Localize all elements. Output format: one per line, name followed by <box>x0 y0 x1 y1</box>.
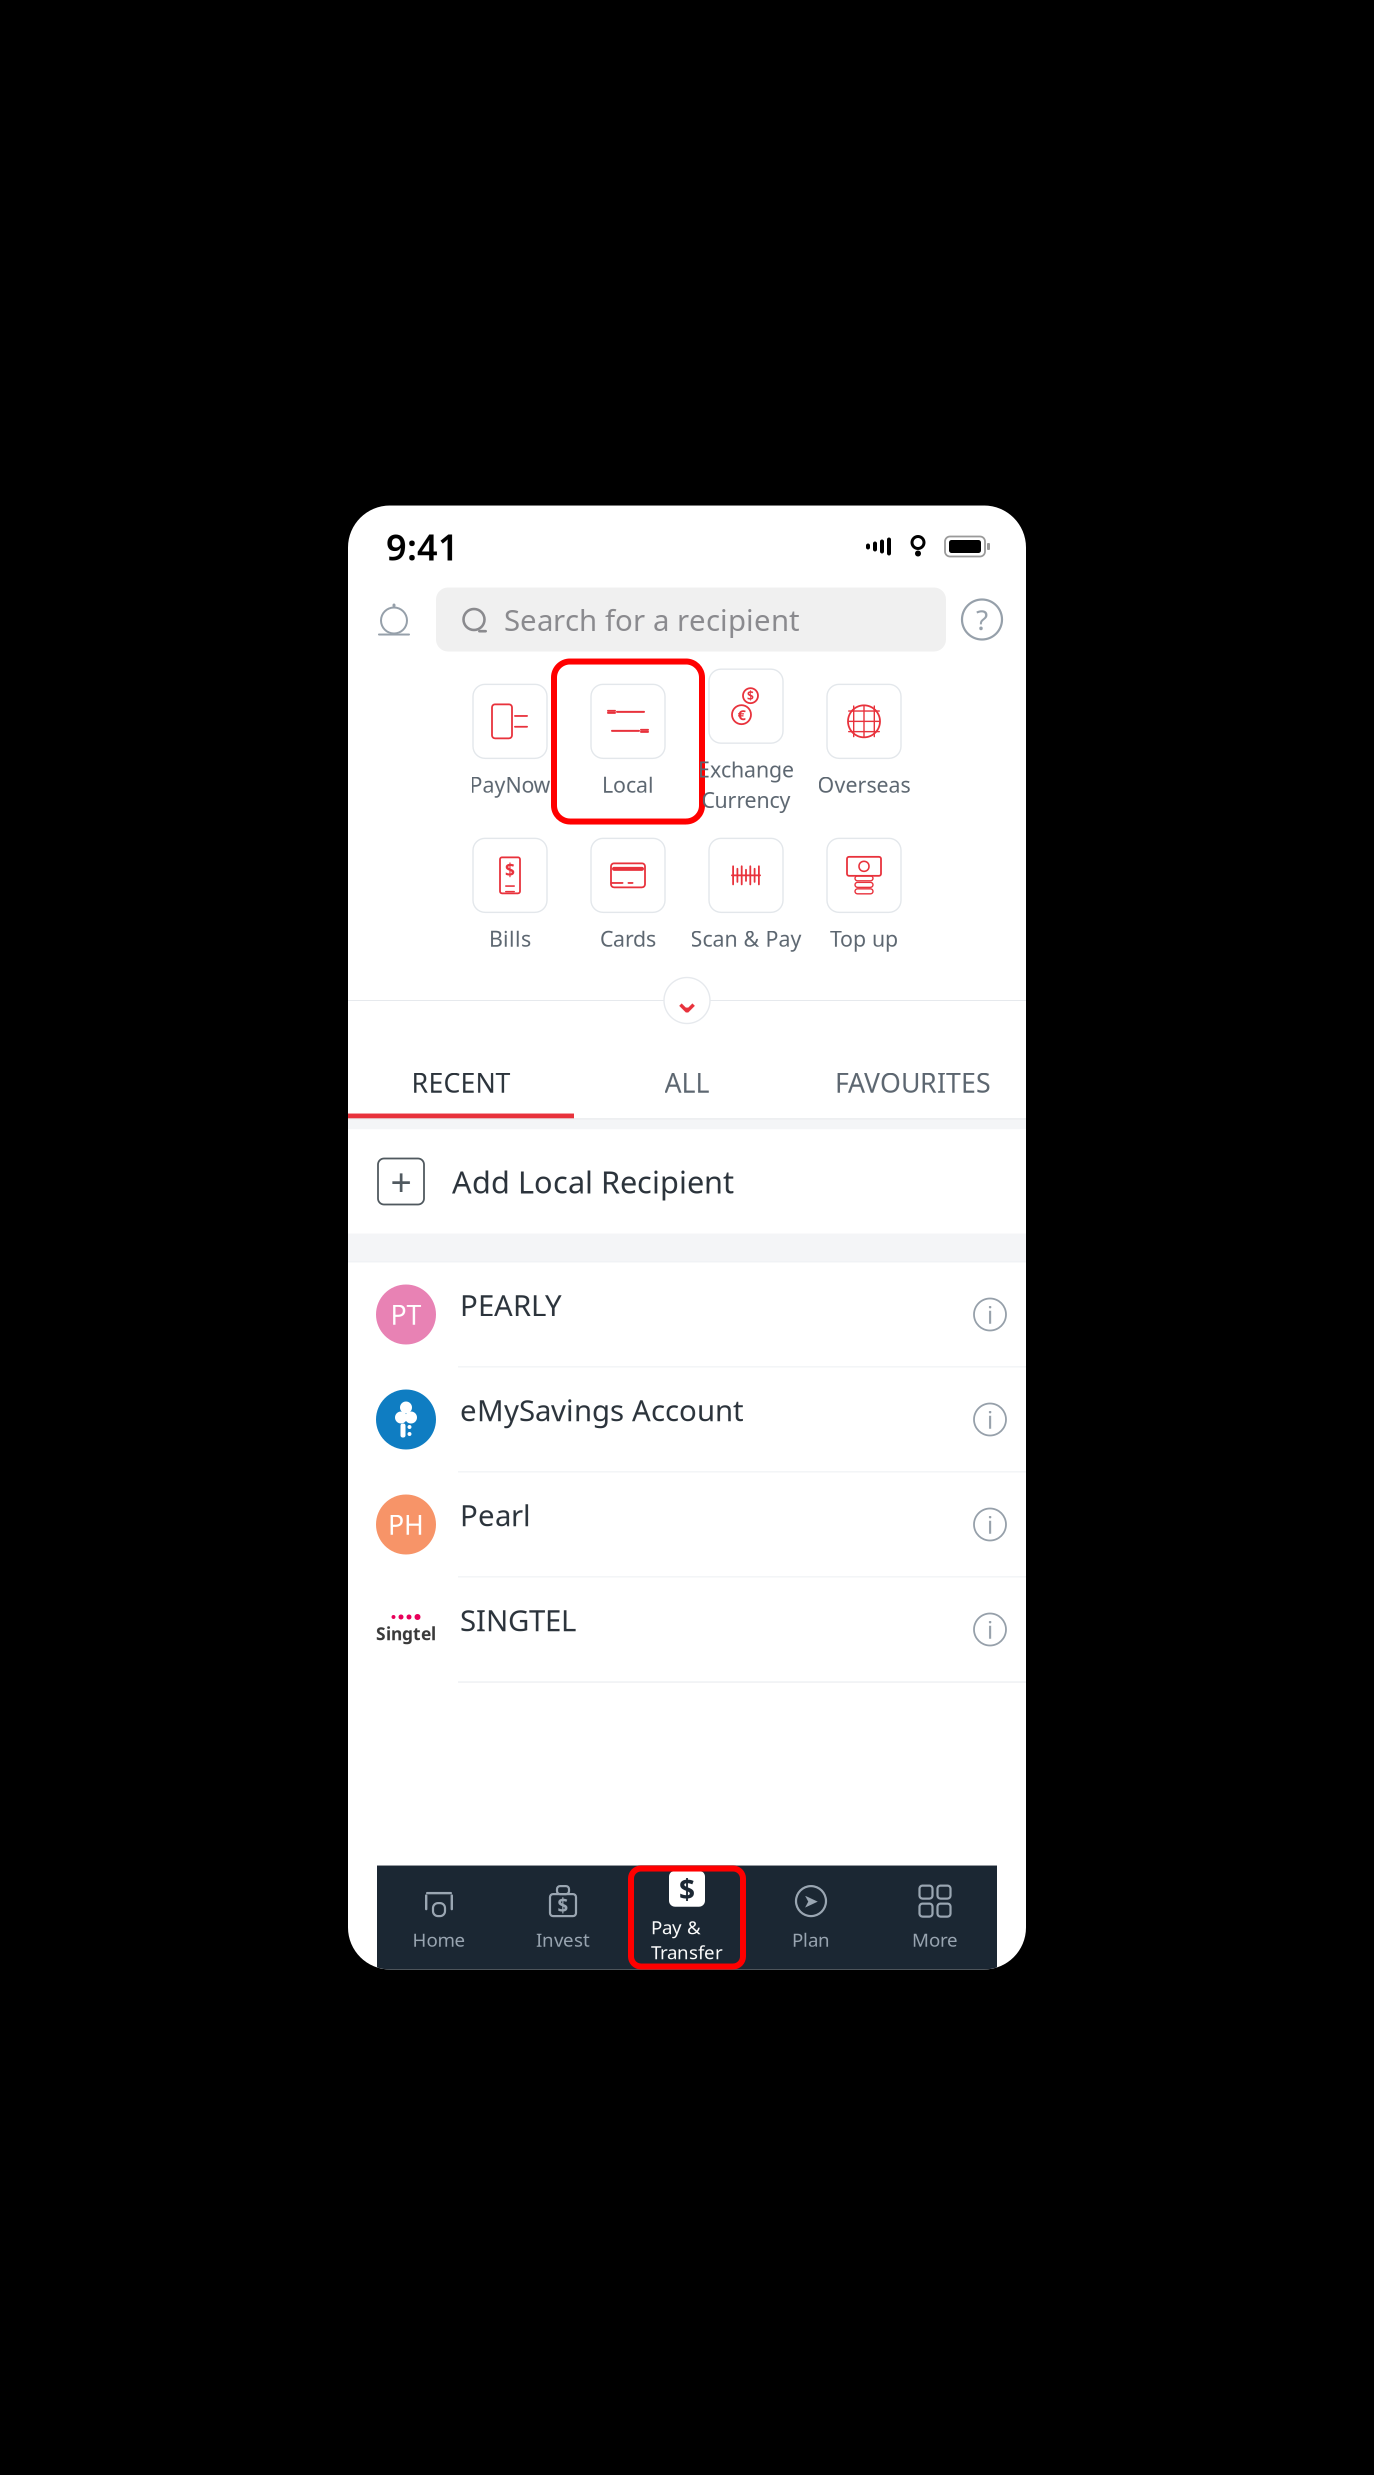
staticText: Top up <box>830 924 898 953</box>
staticText: PT <box>390 1297 421 1332</box>
button[interactable]: Details for Pearl <box>962 1496 1018 1552</box>
staticText: ➤ <box>803 1890 819 1912</box>
button[interactable]: More <box>873 1871 997 1963</box>
staticText: eMySavings Account <box>460 1390 744 1429</box>
staticText: Plan <box>792 1927 830 1952</box>
staticText: € <box>737 705 745 724</box>
staticText: FAVOURITES <box>835 1065 991 1100</box>
button[interactable]: FAVOURITES <box>800 1051 1026 1113</box>
staticText: Local <box>602 770 654 799</box>
staticText: Overseas <box>817 770 910 799</box>
button[interactable]: Search for a recipient <box>436 587 946 651</box>
button[interactable]: Singtel <box>348 1577 1026 1682</box>
staticText: Cards <box>600 924 656 953</box>
staticText: $ <box>557 1893 568 1917</box>
staticText: i <box>987 1614 993 1645</box>
button[interactable]: PH <box>348 1472 1026 1577</box>
button[interactable]: Top up <box>805 821 923 969</box>
button[interactable]: $ <box>625 1871 749 1963</box>
staticText: ⌄ <box>672 981 701 1020</box>
staticText: Search for a recipient <box>504 600 800 639</box>
staticText: 9:41 <box>386 523 459 570</box>
staticText: Add Local Recipient <box>452 1161 734 1202</box>
staticText: $ <box>679 1870 695 1907</box>
staticText: i <box>987 1404 993 1435</box>
button[interactable]: Scan & Pay <box>687 821 805 969</box>
staticText: Exchange <box>698 755 794 783</box>
button[interactable]: Details for SINGTEL <box>962 1601 1018 1657</box>
button[interactable]: eMySavings Account <box>348 1367 1026 1472</box>
staticText: i <box>987 1509 993 1540</box>
button[interactable]: + <box>348 1129 1026 1233</box>
button[interactable]: ALL <box>574 1051 800 1113</box>
button[interactable]: Local <box>569 667 687 815</box>
staticText: ? <box>976 601 988 638</box>
staticText: PayNow <box>469 770 550 799</box>
button[interactable]: Cards <box>569 821 687 969</box>
button[interactable]: Help <box>946 589 1018 649</box>
staticText: SINGTEL <box>460 1600 576 1639</box>
button[interactable]: PT <box>348 1262 1026 1367</box>
staticText: i <box>987 1299 993 1330</box>
button[interactable]: Details for eMySavings Account <box>962 1391 1018 1447</box>
button[interactable]: PayNow <box>451 667 569 815</box>
button[interactable]: Show more actions <box>664 977 710 1023</box>
staticText: PEARLY <box>460 1285 562 1324</box>
button[interactable]: $ <box>687 667 805 815</box>
button[interactable]: Overseas <box>805 667 923 815</box>
staticText: $ <box>747 688 754 704</box>
staticText: Pearl <box>460 1495 531 1534</box>
staticText: + <box>390 1157 411 1206</box>
button[interactable]: ➤ <box>749 1871 873 1963</box>
staticText: $ <box>505 858 515 881</box>
staticText: Pay & Transfer <box>651 1915 723 1964</box>
staticText: Bills <box>489 924 531 953</box>
staticText: Home <box>412 1927 465 1952</box>
button[interactable]: Notifications <box>364 589 424 649</box>
button[interactable]: Details for PEARLY <box>962 1286 1018 1342</box>
staticText: More <box>912 1927 958 1952</box>
staticText: RECENT <box>411 1065 510 1100</box>
button[interactable]: $ <box>501 1871 625 1963</box>
staticText: Currency <box>701 785 790 814</box>
button[interactable]: Home <box>377 1871 501 1963</box>
staticText: ALL <box>664 1065 709 1100</box>
button[interactable]: $ <box>451 821 569 969</box>
button[interactable]: RECENT <box>348 1051 574 1113</box>
staticText: Scan & Pay <box>690 924 801 953</box>
staticText: PH <box>388 1507 424 1542</box>
staticText: Singtel <box>376 1622 436 1645</box>
staticText: Invest <box>536 1927 590 1952</box>
